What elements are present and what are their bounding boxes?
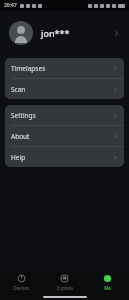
button[interactable]: jon*** bbox=[0, 11, 129, 55]
staticText: Me bbox=[104, 285, 111, 291]
staticText: Scan bbox=[11, 85, 26, 94]
staticText: 20:47 bbox=[4, 2, 17, 9]
button[interactable]: About bbox=[5, 126, 124, 146]
button[interactable]: Me bbox=[86, 274, 129, 291]
staticText: Help bbox=[11, 153, 26, 162]
button[interactable]: Timelapses bbox=[5, 58, 124, 78]
staticText: Timelapses bbox=[11, 64, 46, 73]
staticText: Explore bbox=[57, 285, 73, 291]
button[interactable]: Scan bbox=[5, 79, 124, 99]
staticText: About bbox=[11, 132, 30, 141]
button[interactable]: Explore bbox=[43, 274, 86, 291]
button[interactable]: Devices bbox=[0, 274, 43, 291]
staticText: jon*** bbox=[41, 27, 70, 39]
button[interactable]: Help bbox=[5, 147, 124, 167]
staticText: Devices bbox=[13, 285, 30, 291]
staticText: Settings bbox=[11, 111, 36, 120]
button[interactable]: Settings bbox=[5, 105, 124, 125]
